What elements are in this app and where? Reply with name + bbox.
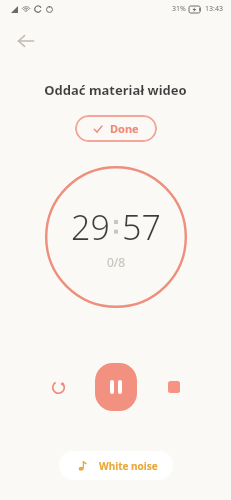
staticText: Done [110,121,139,136]
staticText: 0/8 [107,254,126,270]
button[interactable]: Restart [41,370,75,404]
button[interactable]: Stop [157,370,191,404]
button[interactable]: White noise [59,451,173,480]
staticText: 57 [122,204,161,250]
staticText: 13:43 [205,4,223,14]
button[interactable]: Back [8,23,44,59]
button[interactable]: Done [75,115,157,142]
button[interactable]: Pause [95,363,137,411]
staticText: 29 [71,204,110,250]
staticText: Oddać materiał wideo [0,81,231,99]
staticText: 31% [172,4,186,14]
staticText: White noise [99,459,158,473]
